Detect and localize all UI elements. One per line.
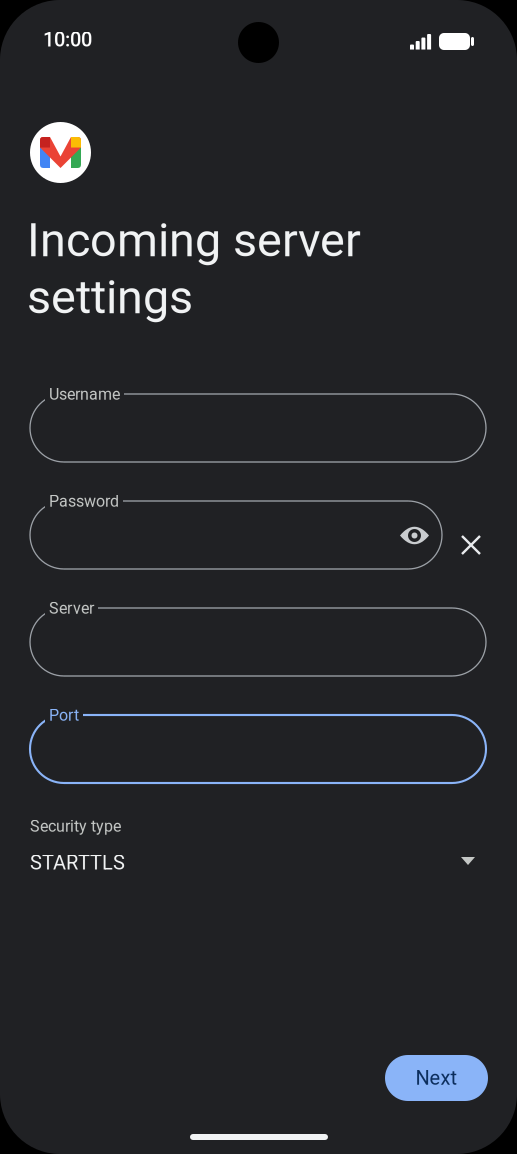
staticText: Server — [49, 599, 94, 618]
button[interactable]: Security type — [30, 817, 486, 885]
staticText: settings — [27, 270, 193, 325]
staticText: Next — [415, 1066, 457, 1090]
staticText: Password — [49, 492, 119, 511]
staticText: Port — [49, 706, 79, 725]
staticText: Username — [49, 385, 120, 404]
staticText: Incoming server — [27, 213, 361, 268]
button[interactable]: Next — [385, 1055, 488, 1101]
staticText: Security type — [30, 817, 121, 836]
button[interactable]: Clear password — [452, 526, 490, 564]
staticText: 10:00 — [43, 28, 92, 51]
staticText: STARTTLS — [30, 851, 125, 874]
